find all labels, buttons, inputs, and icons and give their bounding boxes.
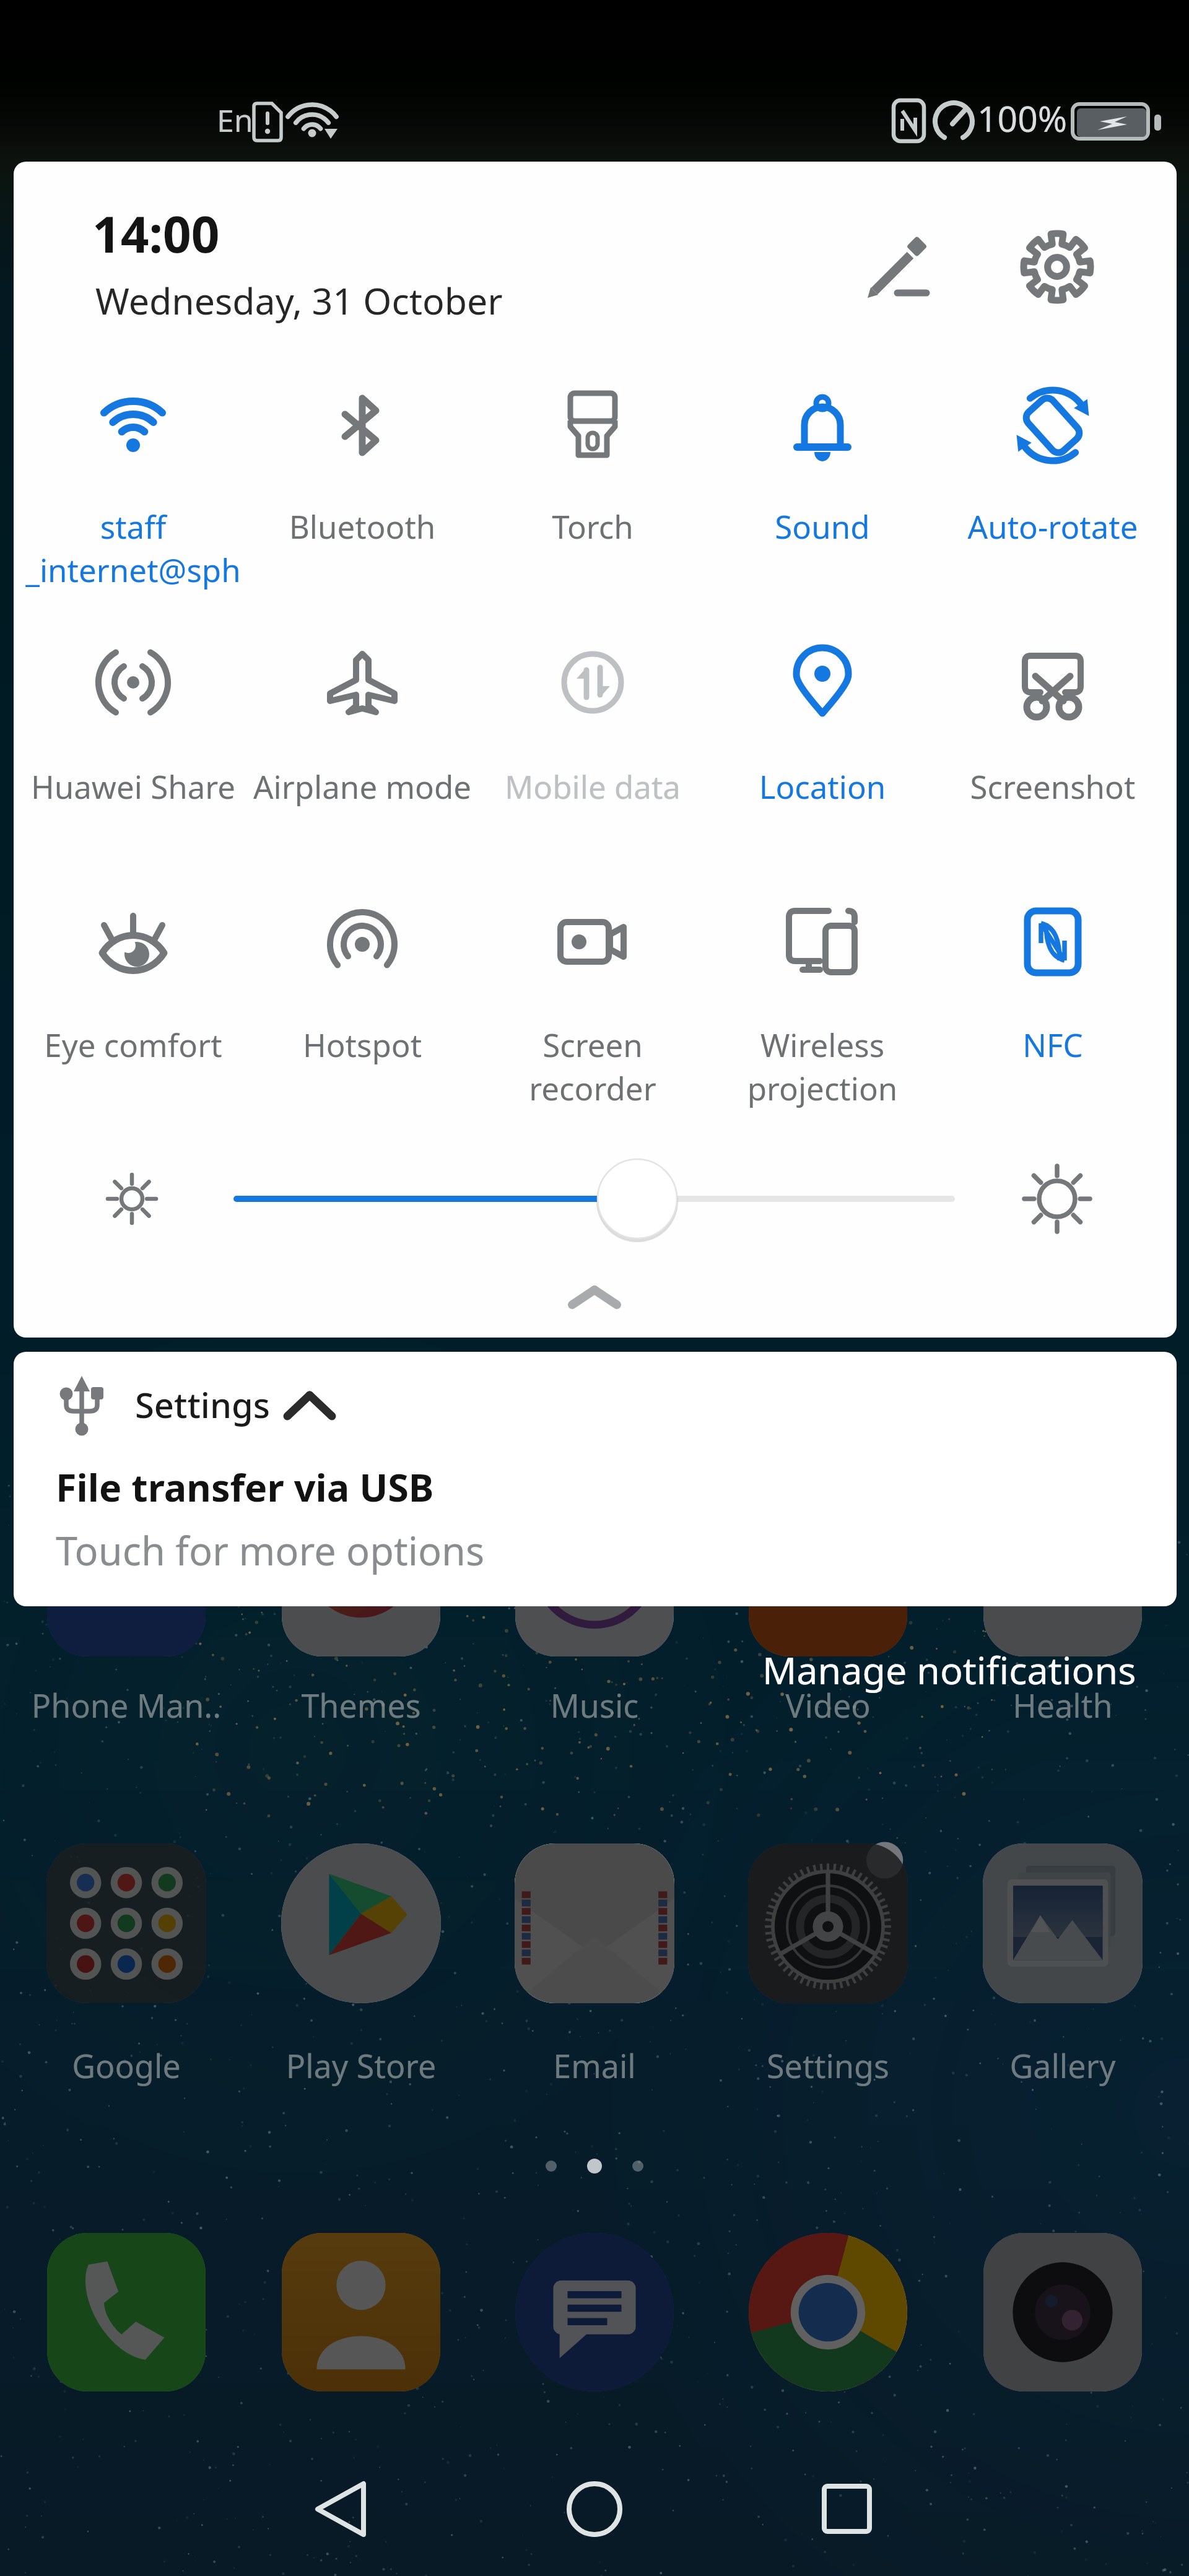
staticText: Sound xyxy=(707,505,938,547)
button[interactable] xyxy=(477,880,708,1066)
button[interactable] xyxy=(477,620,708,806)
button[interactable] xyxy=(477,363,708,549)
staticText: staff _internet@sph xyxy=(18,505,248,591)
button[interactable]: Edit xyxy=(837,224,936,323)
staticText: Play Store xyxy=(243,2043,479,2087)
button[interactable] xyxy=(938,363,1168,549)
button[interactable]: Settings xyxy=(986,224,1085,323)
staticText: NFC xyxy=(938,1023,1168,1066)
staticText: En xyxy=(217,99,253,141)
staticText: 14:00 xyxy=(92,199,220,267)
button[interactable] xyxy=(18,620,248,806)
staticText: Themes xyxy=(243,1683,479,1727)
staticText: Screen recorder xyxy=(477,1023,708,1110)
staticText: Settings xyxy=(710,2043,946,2087)
button[interactable] xyxy=(707,620,938,806)
staticText: Manage notifications xyxy=(762,1644,1136,1695)
staticText: Location xyxy=(707,765,938,807)
button[interactable]: Home xyxy=(520,2435,669,2576)
button[interactable] xyxy=(938,880,1168,1066)
button[interactable] xyxy=(938,620,1168,806)
staticText: Huawei Share xyxy=(18,765,248,807)
staticText: Airplane mode xyxy=(247,765,477,807)
button[interactable] xyxy=(18,363,248,549)
staticText: 100% xyxy=(977,94,1068,142)
staticText: Wednesday, 31 October xyxy=(95,276,503,325)
staticText: Mobile data xyxy=(477,765,708,807)
button[interactable] xyxy=(247,363,477,549)
button[interactable] xyxy=(247,620,477,806)
staticText: Bluetooth xyxy=(247,505,477,547)
button[interactable]: Back xyxy=(268,2435,417,2576)
staticText: Music xyxy=(477,1683,712,1727)
staticText: Wireless projection xyxy=(707,1023,938,1110)
staticText: Phone Man.. xyxy=(9,1683,244,1727)
staticText: File transfer via USB xyxy=(56,1461,434,1513)
staticText: Screenshot xyxy=(938,765,1168,807)
staticText: Settings xyxy=(135,1381,271,1428)
staticText: Health xyxy=(945,1683,1180,1727)
staticText: Gallery xyxy=(945,2043,1180,2087)
staticText: Video xyxy=(710,1683,946,1727)
staticText: Torch xyxy=(477,505,708,547)
button[interactable] xyxy=(18,880,248,1066)
button[interactable]: Settings xyxy=(14,1352,1177,1606)
staticText: Hotspot xyxy=(247,1023,477,1066)
staticText: Email xyxy=(477,2043,712,2087)
staticText: Auto-rotate xyxy=(938,505,1168,547)
button[interactable]: Recents xyxy=(772,2435,921,2576)
button[interactable] xyxy=(707,880,938,1066)
staticText: Touch for more options xyxy=(56,1524,485,1577)
button[interactable] xyxy=(707,363,938,549)
staticText: Google xyxy=(9,2043,244,2087)
staticText: Eye comfort xyxy=(18,1023,248,1066)
button[interactable] xyxy=(247,880,477,1066)
